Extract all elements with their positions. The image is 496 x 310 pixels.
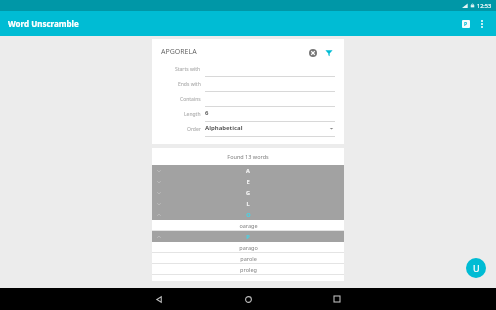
button[interactable]: Ends with xyxy=(161,77,335,92)
button[interactable]: Length xyxy=(161,107,335,122)
button[interactable]: proleg xyxy=(152,264,344,275)
staticText: Found 13 words xyxy=(227,153,269,160)
other: Expand xyxy=(156,168,162,174)
staticText: proleg xyxy=(240,266,257,273)
staticText: oarage xyxy=(239,222,258,229)
staticText: APGORELA xyxy=(161,47,197,57)
other: Collapse xyxy=(156,234,162,240)
button[interactable]: Order xyxy=(161,122,335,137)
button[interactable]: Filter xyxy=(322,46,335,59)
staticText: Alphabetical xyxy=(205,124,243,132)
button[interactable]: Collapse xyxy=(152,209,344,220)
staticText: Order xyxy=(187,126,201,133)
staticText: parole xyxy=(240,255,257,262)
button[interactable]: parago xyxy=(152,242,344,253)
button[interactable]: parole xyxy=(152,253,344,264)
staticText: P xyxy=(464,21,468,28)
staticText: 12:53 xyxy=(477,2,492,9)
button[interactable]: Starts with xyxy=(161,62,335,77)
staticText: G xyxy=(246,189,250,196)
staticText: Length xyxy=(184,111,201,118)
button[interactable]: Collapse xyxy=(152,231,344,242)
staticText: A xyxy=(246,167,250,174)
staticText: O xyxy=(246,211,251,218)
staticText: parago xyxy=(239,244,258,251)
button[interactable]: More options xyxy=(474,16,490,32)
button[interactable]: Clear xyxy=(306,46,319,59)
button[interactable]: Expand xyxy=(152,187,344,198)
staticText: Starts with xyxy=(175,66,201,73)
staticText: Ends with xyxy=(178,81,201,88)
button[interactable]: Expand xyxy=(152,176,344,187)
staticText: U xyxy=(473,262,480,274)
other: Expand xyxy=(156,190,162,196)
button[interactable]: Unscramble xyxy=(466,258,486,278)
staticText: Word Unscramble xyxy=(8,18,79,29)
button[interactable]: Recent apps xyxy=(328,290,346,308)
button[interactable]: Dictionary xyxy=(458,16,474,32)
other: Collapse xyxy=(156,212,162,218)
staticText: E xyxy=(246,178,250,185)
staticText: L xyxy=(246,200,250,207)
button[interactable]: Expand xyxy=(152,165,344,176)
staticText: 6 xyxy=(205,109,209,117)
button[interactable]: oarage xyxy=(152,220,344,231)
button[interactable]: Home xyxy=(239,290,257,308)
staticText: Contains xyxy=(180,96,201,103)
button[interactable]: Expand xyxy=(152,198,344,209)
other: Expand xyxy=(156,179,162,185)
button[interactable]: Contains xyxy=(161,92,335,107)
other: Expand xyxy=(156,201,162,207)
staticText: P xyxy=(246,233,250,240)
button[interactable]: Back xyxy=(150,290,168,308)
